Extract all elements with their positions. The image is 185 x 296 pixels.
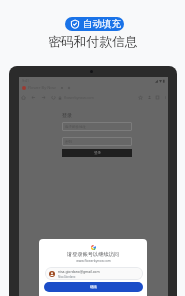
staticText: Flower By Now [28, 85, 56, 90]
staticText: 自动填充 [83, 18, 121, 30]
other: Close tab [60, 86, 64, 90]
staticText: 密码 [65, 140, 72, 144]
staticText: flowerbynow.com [64, 95, 94, 100]
button[interactable]: Home [19, 93, 28, 102]
staticText: 9:41 [22, 78, 30, 83]
button[interactable]: 登录 [62, 149, 132, 157]
staticText: www.flowerbynow.com [76, 259, 111, 263]
button[interactable]: Forward [39, 93, 48, 102]
other: New tab [67, 86, 71, 90]
button[interactable]: nisa.giordano@gmail.com [45, 267, 143, 280]
button[interactable]: 自动填充 [65, 17, 124, 31]
staticText: 继续 [90, 285, 97, 289]
staticText: 请登录账号以继续访问 [67, 251, 119, 258]
button[interactable]: Profile [145, 93, 154, 102]
button[interactable]: Bookmark [136, 93, 145, 102]
staticText: 登录 [62, 112, 72, 118]
button[interactable]: Reload [49, 93, 58, 102]
staticText: 登录 [94, 151, 101, 155]
staticText: nisa.giordano@gmail.com [58, 269, 100, 274]
button[interactable]: Extensions [153, 93, 162, 102]
staticText: 密码和付款信息 [48, 34, 138, 50]
button[interactable]: 密码 [62, 137, 132, 146]
button[interactable]: 电子邮件地址 [62, 122, 132, 131]
staticText: Nisa Giordano [58, 275, 76, 279]
button[interactable]: More options [161, 93, 170, 102]
button[interactable]: 继续 [44, 282, 143, 292]
staticText: 电子邮件地址 [65, 125, 86, 129]
button[interactable]: Back [29, 93, 38, 102]
